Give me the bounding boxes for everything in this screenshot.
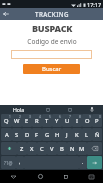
staticText: X (30, 145, 34, 153)
staticText: 8 (79, 115, 81, 119)
button[interactable]: I (72, 114, 82, 127)
button[interactable]: . (79, 156, 87, 169)
button[interactable]: Sticker (37, 105, 59, 114)
staticText: 6 (59, 115, 61, 119)
button[interactable]: C (37, 142, 47, 155)
button[interactable]: Back (0, 8, 12, 20)
button[interactable]: A (1, 128, 12, 141)
button[interactable]: R (32, 114, 42, 127)
staticText: 0 (99, 115, 101, 119)
staticText: A (5, 131, 9, 139)
button[interactable]: V (47, 142, 57, 155)
staticText: Z (20, 145, 24, 153)
staticText: Codigo de envio (27, 37, 77, 46)
button[interactable]: Q (1, 114, 12, 127)
staticText: U (65, 117, 70, 125)
button[interactable]: Buscar (23, 64, 80, 74)
button[interactable]: J (62, 128, 72, 141)
button[interactable]: W (12, 114, 22, 127)
button[interactable]: M (77, 142, 87, 155)
staticText: P (95, 117, 99, 125)
button[interactable]: Home (27, 170, 53, 183)
staticText: 2 (19, 115, 21, 119)
staticText: S (15, 131, 19, 139)
staticText: 17:17 (87, 1, 102, 8)
button[interactable]: Recents (53, 170, 79, 183)
button[interactable]: Y (52, 114, 62, 127)
button[interactable]: X (27, 142, 37, 155)
staticText: N (70, 145, 75, 153)
staticText: 3 (29, 115, 31, 119)
staticText: 1 (9, 115, 11, 119)
staticText: L (85, 131, 89, 139)
button[interactable]: T (42, 114, 52, 127)
staticText: Y (55, 117, 59, 125)
button[interactable]: Z (17, 142, 27, 155)
button[interactable]: Symbols (1, 156, 16, 169)
button[interactable]: B (57, 142, 67, 155)
button[interactable]: Switch keyboard (79, 170, 103, 183)
staticText: 9 (89, 115, 91, 119)
staticText: D (25, 131, 30, 139)
button[interactable]: , (16, 156, 24, 169)
button[interactable]: E (22, 114, 32, 127)
staticText: 7 (69, 115, 71, 119)
staticText: G (45, 131, 50, 139)
button[interactable]: F (32, 128, 42, 141)
staticText: H (55, 131, 60, 139)
staticText: T (45, 117, 49, 125)
button[interactable]: H (52, 128, 62, 141)
staticText: B (60, 145, 64, 153)
staticText: V (50, 145, 54, 153)
staticText: R (35, 117, 39, 125)
staticText: J (66, 131, 68, 139)
button[interactable]: L (82, 128, 92, 141)
button[interactable]: Voice input (81, 105, 103, 114)
staticText: 5 (49, 115, 51, 119)
staticText: C (40, 145, 44, 153)
staticText: E (25, 117, 29, 125)
button[interactable]: GIF (59, 105, 81, 114)
staticText: BUSPACK (32, 22, 73, 32)
button[interactable]: K (72, 128, 82, 141)
button[interactable]: S (12, 128, 22, 141)
button[interactable] (11, 50, 92, 59)
button[interactable]: Backspace (87, 142, 102, 155)
staticText: M (79, 145, 85, 153)
staticText: Buscar (42, 65, 62, 73)
staticText: I (76, 117, 78, 125)
staticText: Ñ (95, 131, 100, 139)
button[interactable]: P (92, 114, 102, 127)
button[interactable]: Hola (0, 105, 37, 114)
staticText: ?1@ (4, 160, 13, 166)
button[interactable]: D (22, 128, 32, 141)
button[interactable]: Ñ (92, 128, 102, 141)
staticText: Q (4, 117, 9, 125)
button[interactable]: Enter (87, 156, 102, 169)
staticText: , (19, 159, 21, 166)
staticText: F (35, 131, 39, 139)
staticText: K (75, 131, 79, 139)
staticText: Hola (13, 106, 25, 113)
button[interactable]: Shift (1, 142, 17, 155)
button[interactable]: N (67, 142, 77, 155)
button[interactable]: U (62, 114, 72, 127)
staticText: . (82, 159, 84, 166)
staticText: TRACKING (35, 10, 69, 18)
button[interactable]: O (82, 114, 92, 127)
staticText: O (85, 117, 90, 125)
button[interactable]: G (42, 128, 52, 141)
staticText: 4 (39, 115, 41, 119)
button[interactable]: Back (0, 170, 27, 183)
staticText: W (14, 117, 20, 125)
